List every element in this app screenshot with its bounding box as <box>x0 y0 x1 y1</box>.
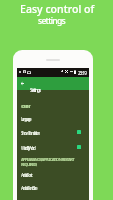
button[interactable]: Back <box>17 77 28 90</box>
staticText: Arabic Font <box>21 172 32 178</box>
button[interactable]: Arabic Font <box>17 168 89 181</box>
staticText: APPEARANCE(APPLICATION RESTART <box>21 157 74 162</box>
staticText: Easy control of <box>20 2 95 16</box>
staticText: Arabic Font Size <box>21 185 37 191</box>
button[interactable]: Language <box>17 112 89 125</box>
staticText: CONTENT <box>21 104 30 109</box>
staticText: 23:19 <box>78 70 87 76</box>
staticText: Word By Word <box>21 145 35 151</box>
staticText: Show Translation <box>21 130 40 136</box>
button[interactable]: Show Translation <box>17 126 89 139</box>
staticText: REQUIRED) <box>21 162 37 167</box>
button[interactable]: Arabic Font Size <box>17 181 89 194</box>
staticText: Settings <box>30 87 41 94</box>
button[interactable]: Word By Word <box>17 141 89 154</box>
staticText: settings <box>38 15 65 27</box>
staticText: Language <box>21 116 31 122</box>
